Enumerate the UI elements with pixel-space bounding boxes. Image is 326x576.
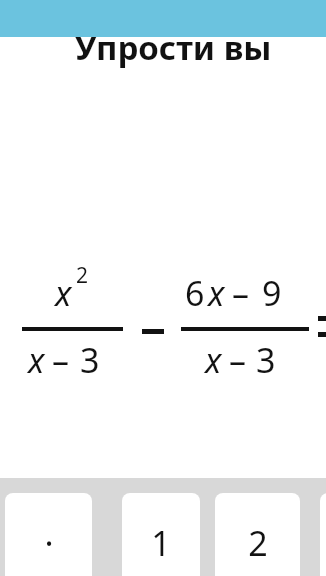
staticText: 9 (262, 270, 282, 316)
staticText: – (52, 337, 69, 383)
staticText: 6 (185, 270, 205, 316)
staticText: – (229, 337, 246, 383)
button[interactable]: Key (320, 493, 326, 576)
button[interactable]: 1 (122, 493, 200, 576)
staticText: 2 (76, 261, 89, 290)
staticText: x (55, 270, 72, 316)
button[interactable]: Упрости вы (0, 0, 326, 80)
button[interactable]: 2 (215, 493, 300, 576)
staticText: Упрости вы (75, 25, 272, 70)
staticText: x (208, 270, 225, 316)
staticText: – (232, 270, 249, 316)
staticText: · (44, 520, 54, 566)
staticText: 3 (80, 337, 100, 383)
staticText: x (28, 337, 45, 383)
staticText: 1 (151, 520, 171, 566)
staticText: x (205, 337, 222, 383)
staticText: 2 (248, 520, 268, 566)
staticText: 3 (256, 337, 276, 383)
button[interactable]: · (5, 493, 92, 576)
